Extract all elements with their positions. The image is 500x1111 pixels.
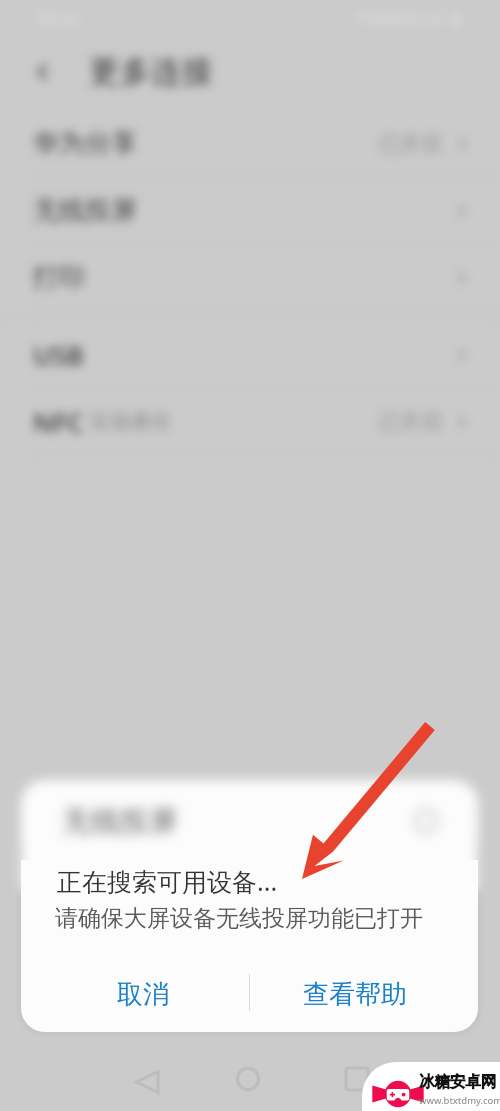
button[interactable]: Back	[30, 59, 56, 85]
staticText: NFC	[33, 404, 84, 439]
staticText: 更多连接	[89, 52, 213, 91]
staticText: USB	[33, 337, 84, 372]
button[interactable]: 无线投屏	[0, 177, 500, 244]
button[interactable]: NFC	[0, 388, 500, 455]
staticText: 取消	[117, 978, 169, 1011]
button[interactable]: 取消	[21, 956, 249, 1032]
staticText: 打印	[33, 261, 85, 294]
staticText: 正在搜索可用设备...	[57, 864, 278, 898]
button[interactable]: USB	[0, 321, 500, 388]
staticText: 近场通信	[90, 409, 170, 434]
staticText: 已开启	[379, 409, 442, 435]
button[interactable]: 查看帮助	[249, 956, 478, 1032]
staticText: 无线投屏	[33, 194, 137, 227]
button[interactable]: Back	[122, 1057, 172, 1107]
staticText: 已开启	[379, 131, 442, 157]
staticText: 无线投屏	[62, 803, 178, 840]
button[interactable]: 华为分享	[0, 110, 500, 177]
staticText: 冰糖安卓网	[419, 1072, 497, 1092]
staticText: 查看帮助	[303, 978, 407, 1011]
button[interactable]: Recents	[332, 1054, 382, 1104]
button[interactable]: 打印	[0, 244, 500, 311]
button[interactable]: Home	[223, 1054, 273, 1104]
staticText: 请确保大屏设备无线投屏功能已打开	[55, 904, 423, 933]
staticText: 华为分享	[33, 127, 137, 160]
staticText: www.btxtdmy.com	[419, 1094, 500, 1107]
